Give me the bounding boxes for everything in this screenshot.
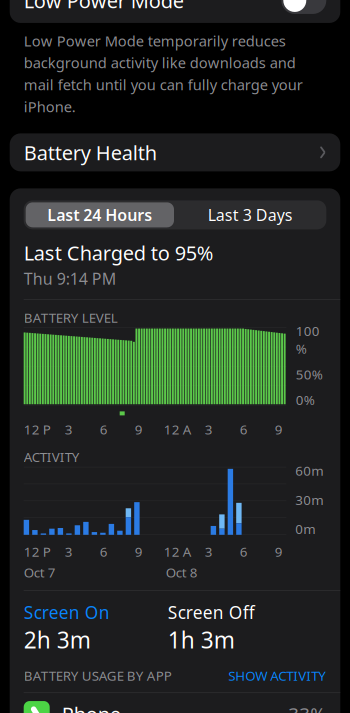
staticText: 9 bbox=[135, 543, 143, 560]
staticText: 3 bbox=[205, 420, 213, 438]
staticText: Screen Off bbox=[168, 601, 255, 624]
staticText: 33% bbox=[288, 702, 326, 713]
staticText: 12 A bbox=[164, 420, 192, 438]
staticText: Screen On bbox=[24, 601, 110, 624]
staticText: 30m bbox=[295, 491, 323, 509]
button[interactable]: SHOW ACTIVITY bbox=[228, 667, 326, 684]
staticText: Low Power Mode temporarily reduces backg… bbox=[24, 31, 303, 116]
staticText: 50% bbox=[296, 365, 323, 383]
staticText: 12 P bbox=[24, 420, 51, 438]
staticText: 6 bbox=[240, 420, 248, 438]
staticText: 0m bbox=[295, 520, 315, 538]
staticText: 12 P bbox=[24, 543, 51, 560]
staticText: 0% bbox=[296, 391, 315, 409]
staticText: 60m bbox=[295, 462, 323, 479]
staticText: BATTERY LEVEL bbox=[24, 309, 118, 326]
staticText: 6 bbox=[240, 543, 248, 560]
button[interactable]: Battery Health bbox=[0, 133, 350, 171]
staticText: 3 bbox=[65, 543, 73, 560]
staticText: BATTERY USAGE BY APP bbox=[24, 667, 172, 684]
staticText: 1h 3m bbox=[168, 625, 235, 655]
staticText: 9 bbox=[135, 420, 143, 438]
button[interactable]: Last 24 Hours bbox=[26, 202, 174, 227]
staticText: 6 bbox=[100, 543, 108, 560]
staticText: Low Power Mode bbox=[24, 0, 184, 14]
staticText: Oct 7 bbox=[24, 563, 56, 581]
staticText: 2h 3m bbox=[24, 625, 91, 655]
staticText: Last 24 Hours bbox=[47, 204, 152, 225]
staticText: 9 bbox=[275, 543, 283, 560]
staticText: Battery Health bbox=[24, 139, 157, 166]
staticText: Last 3 Days bbox=[208, 204, 293, 225]
staticText: 9 bbox=[275, 420, 283, 438]
staticText: Phone bbox=[62, 701, 121, 713]
staticText: 3 bbox=[65, 420, 73, 438]
button[interactable]: Phone bbox=[10, 693, 340, 713]
staticText: SHOW ACTIVITY bbox=[228, 667, 326, 684]
button[interactable]: Low Power Mode bbox=[0, 0, 350, 23]
staticText: 100% bbox=[296, 322, 320, 357]
staticText: Oct 8 bbox=[166, 563, 198, 581]
staticText: ACTIVITY bbox=[24, 448, 80, 466]
staticText: Last Charged to 95% bbox=[24, 239, 214, 266]
staticText: 3 bbox=[205, 543, 213, 560]
staticText: 12 A bbox=[164, 543, 192, 560]
staticText: 6 bbox=[100, 420, 108, 438]
staticText: Thu 9:14 PM bbox=[24, 268, 117, 289]
button[interactable]: Last 3 Days bbox=[176, 202, 324, 227]
